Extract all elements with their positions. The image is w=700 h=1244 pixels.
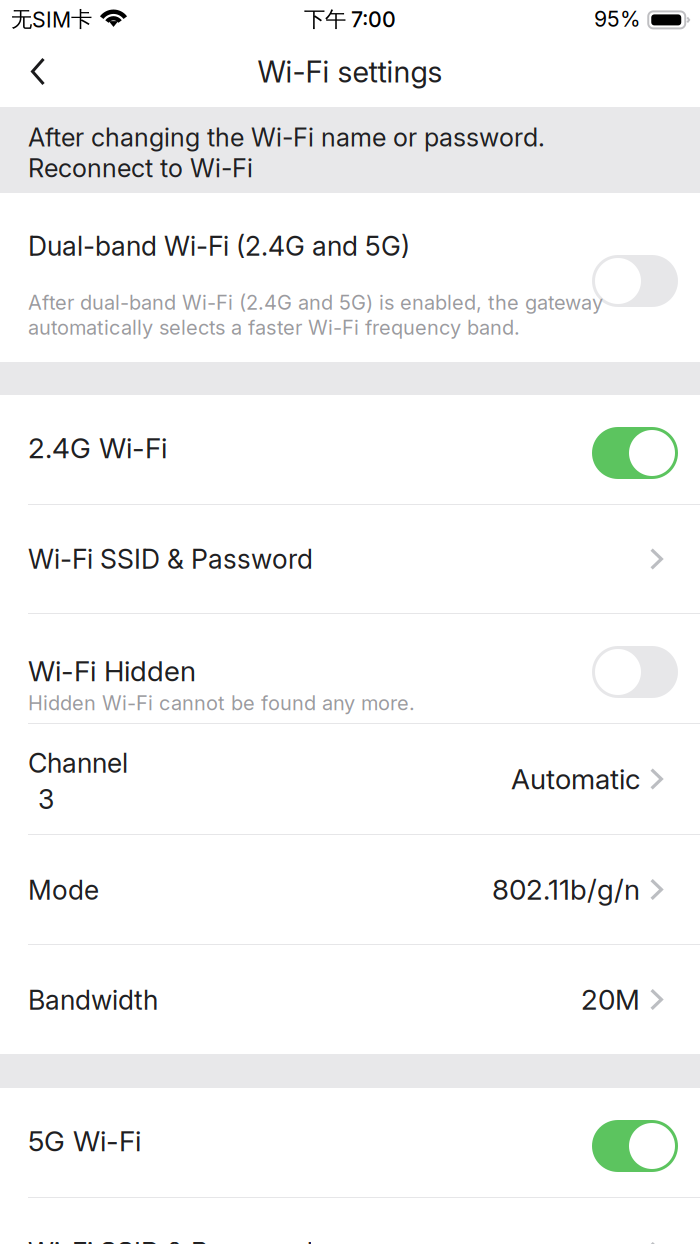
staticText: Wi-Fi Hidden: [28, 654, 196, 688]
button[interactable]: Dual-band Wi-Fi (2.4G and 5G): [0, 193, 700, 362]
staticText: 20M: [581, 983, 640, 1016]
staticText: Reconnect to Wi-Fi: [28, 153, 253, 183]
button[interactable]: 5G Wi-Fi: [0, 1088, 700, 1197]
staticText: After dual-band Wi-Fi (2.4G and 5G) is e…: [28, 290, 603, 314]
staticText: 3: [38, 783, 54, 816]
staticText: 5G Wi-Fi: [28, 1124, 141, 1158]
staticText: 无SIM卡: [11, 6, 92, 33]
staticText: Automatic: [511, 762, 640, 796]
button[interactable]: Automatic: [0, 724, 700, 834]
button[interactable]: 802.11b/g/n: [0, 835, 700, 944]
staticText: 下午: [304, 6, 346, 33]
staticText: automatically selects a faster Wi-Fi fre…: [28, 315, 520, 340]
staticText: Mode: [28, 874, 99, 906]
button[interactable]: Wi-Fi Hidden: [0, 614, 700, 723]
staticText: Channel: [28, 747, 128, 779]
button[interactable]: Wi-Fi SSID & Password: [0, 1198, 700, 1244]
staticText: Wi-Fi SSID & Password: [28, 543, 313, 575]
staticText: After changing the Wi-Fi name or passwor…: [28, 122, 545, 153]
staticText: Hidden Wi-Fi cannot be found any more.: [28, 691, 415, 715]
staticText: 802.11b/g/n: [492, 873, 640, 906]
button[interactable]: 20M: [0, 945, 700, 1054]
staticText: Wi-Fi settings: [257, 54, 442, 89]
button[interactable]: Back: [8, 42, 68, 105]
staticText: Dual-band Wi-Fi (2.4G and 5G): [28, 230, 410, 262]
staticText: 95%: [594, 6, 641, 32]
staticText: 2.4G Wi-Fi: [28, 431, 167, 465]
staticText: Bandwidth: [28, 984, 158, 1016]
staticText: Wi-Fi SSID & Password: [28, 1236, 313, 1244]
button[interactable]: Wi-Fi SSID & Password: [0, 505, 700, 613]
button[interactable]: 2.4G Wi-Fi: [0, 395, 700, 504]
staticText: 7:00: [351, 6, 396, 32]
